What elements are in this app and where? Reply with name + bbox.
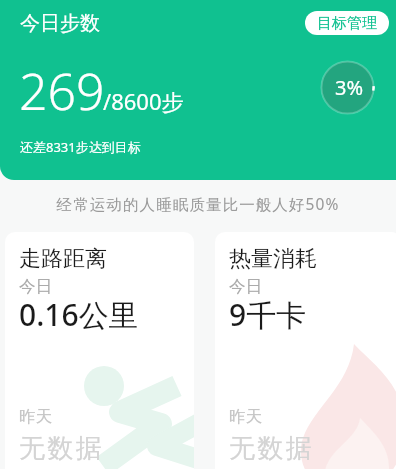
staticText: 无数据 (19, 432, 105, 465)
button[interactable]: 步数进度 3% (320, 60, 375, 115)
staticText: 9千卡 (229, 294, 307, 335)
staticText: 走路距离 (19, 245, 107, 273)
staticText: 经常运动的人睡眠质量比一般人好50% (0, 193, 396, 214)
staticText: /8600步 (103, 86, 184, 116)
staticText: 今日 (19, 276, 52, 297)
button[interactable]: 走路距离 (5, 232, 194, 469)
staticText: 昨天 (229, 406, 262, 427)
staticText: 还差8331步达到目标 (20, 138, 141, 156)
staticText: 目标管理 (317, 14, 377, 33)
button[interactable]: 热量消耗 (215, 232, 396, 469)
staticText: 269 (19, 57, 105, 125)
staticText: 3% (335, 74, 364, 101)
staticText: 今日 (229, 276, 262, 297)
staticText: 热量消耗 (229, 245, 317, 273)
staticText: 0.16公里 (19, 294, 139, 335)
staticText: 今日步数 (20, 11, 100, 36)
staticText: 昨天 (19, 406, 52, 427)
button[interactable]: 目标管理 (305, 11, 389, 35)
staticText: 无数据 (229, 432, 315, 465)
